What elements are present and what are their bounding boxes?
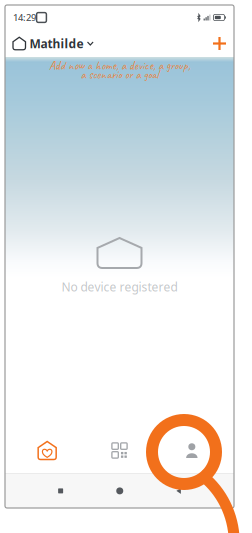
staticText: 14:29: [13, 11, 36, 24]
button[interactable]: Profile: [156, 428, 228, 473]
staticText: Add now a home, a device, a group,: [49, 58, 190, 73]
staticText: Mathilde: [29, 35, 83, 51]
button[interactable]: Devices: [83, 428, 156, 473]
button[interactable]: Mathilde: [13, 35, 93, 51]
staticText: a scenario or a goal: [80, 67, 158, 82]
button[interactable]: Home: [11, 428, 83, 473]
button[interactable]: Add: [213, 37, 226, 50]
staticText: No device registered: [61, 279, 177, 295]
